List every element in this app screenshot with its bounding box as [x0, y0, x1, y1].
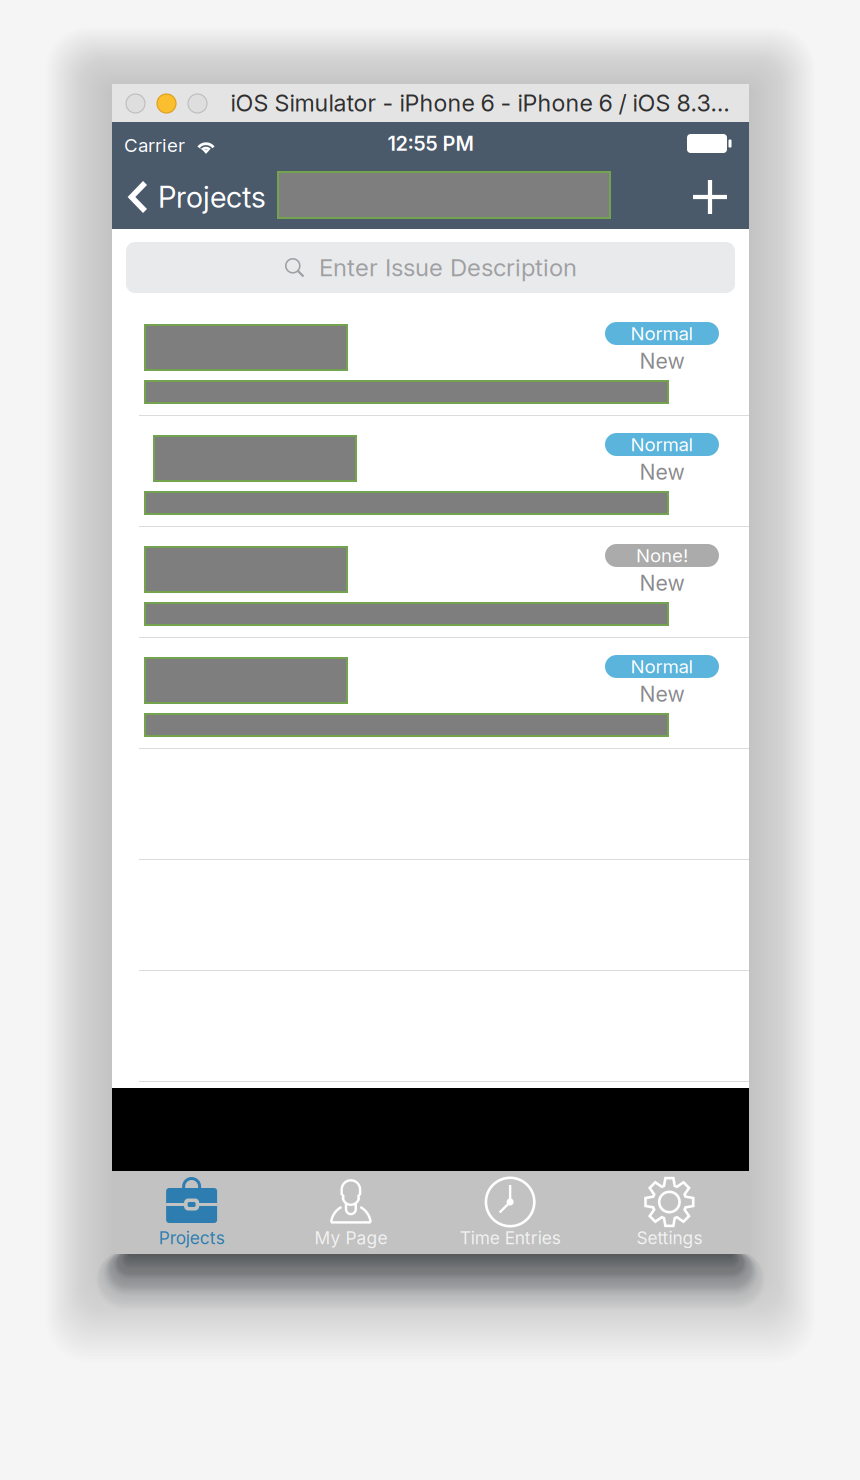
button[interactable]: None!: [112, 527, 749, 638]
staticText: Carrier: [124, 134, 185, 157]
button[interactable]: Normal: [112, 305, 749, 416]
staticText: New: [639, 348, 684, 374]
button[interactable]: Projects: [112, 165, 278, 229]
button[interactable]: Normal: [112, 638, 749, 749]
button[interactable]: Time Entries: [430, 1171, 590, 1254]
staticText: Normal: [630, 322, 693, 345]
button[interactable]: Projects: [112, 1171, 271, 1254]
staticText: New: [639, 459, 684, 485]
staticText: My Page: [314, 1227, 387, 1248]
staticText: 12:55 PM: [387, 131, 473, 156]
staticText: Time Entries: [460, 1227, 561, 1248]
staticText: New: [639, 570, 684, 596]
staticText: iOS Simulator - iPhone 6 - iPhone 6 / iO…: [230, 89, 729, 117]
button[interactable]: Settings: [590, 1171, 749, 1254]
staticText: Enter Issue Description: [319, 253, 577, 282]
button[interactable]: Enter Issue Description: [126, 242, 735, 293]
staticText: New: [639, 681, 684, 707]
staticText: Settings: [636, 1227, 702, 1248]
staticText: Projects: [159, 1227, 225, 1248]
staticText: None!: [636, 544, 688, 567]
button[interactable]: My Page: [271, 1171, 430, 1254]
staticText: Projects: [158, 179, 266, 215]
button[interactable]: Normal: [112, 416, 749, 527]
button[interactable]: Add issue: [671, 165, 749, 229]
staticText: Normal: [630, 433, 693, 456]
staticText: Normal: [630, 655, 693, 678]
